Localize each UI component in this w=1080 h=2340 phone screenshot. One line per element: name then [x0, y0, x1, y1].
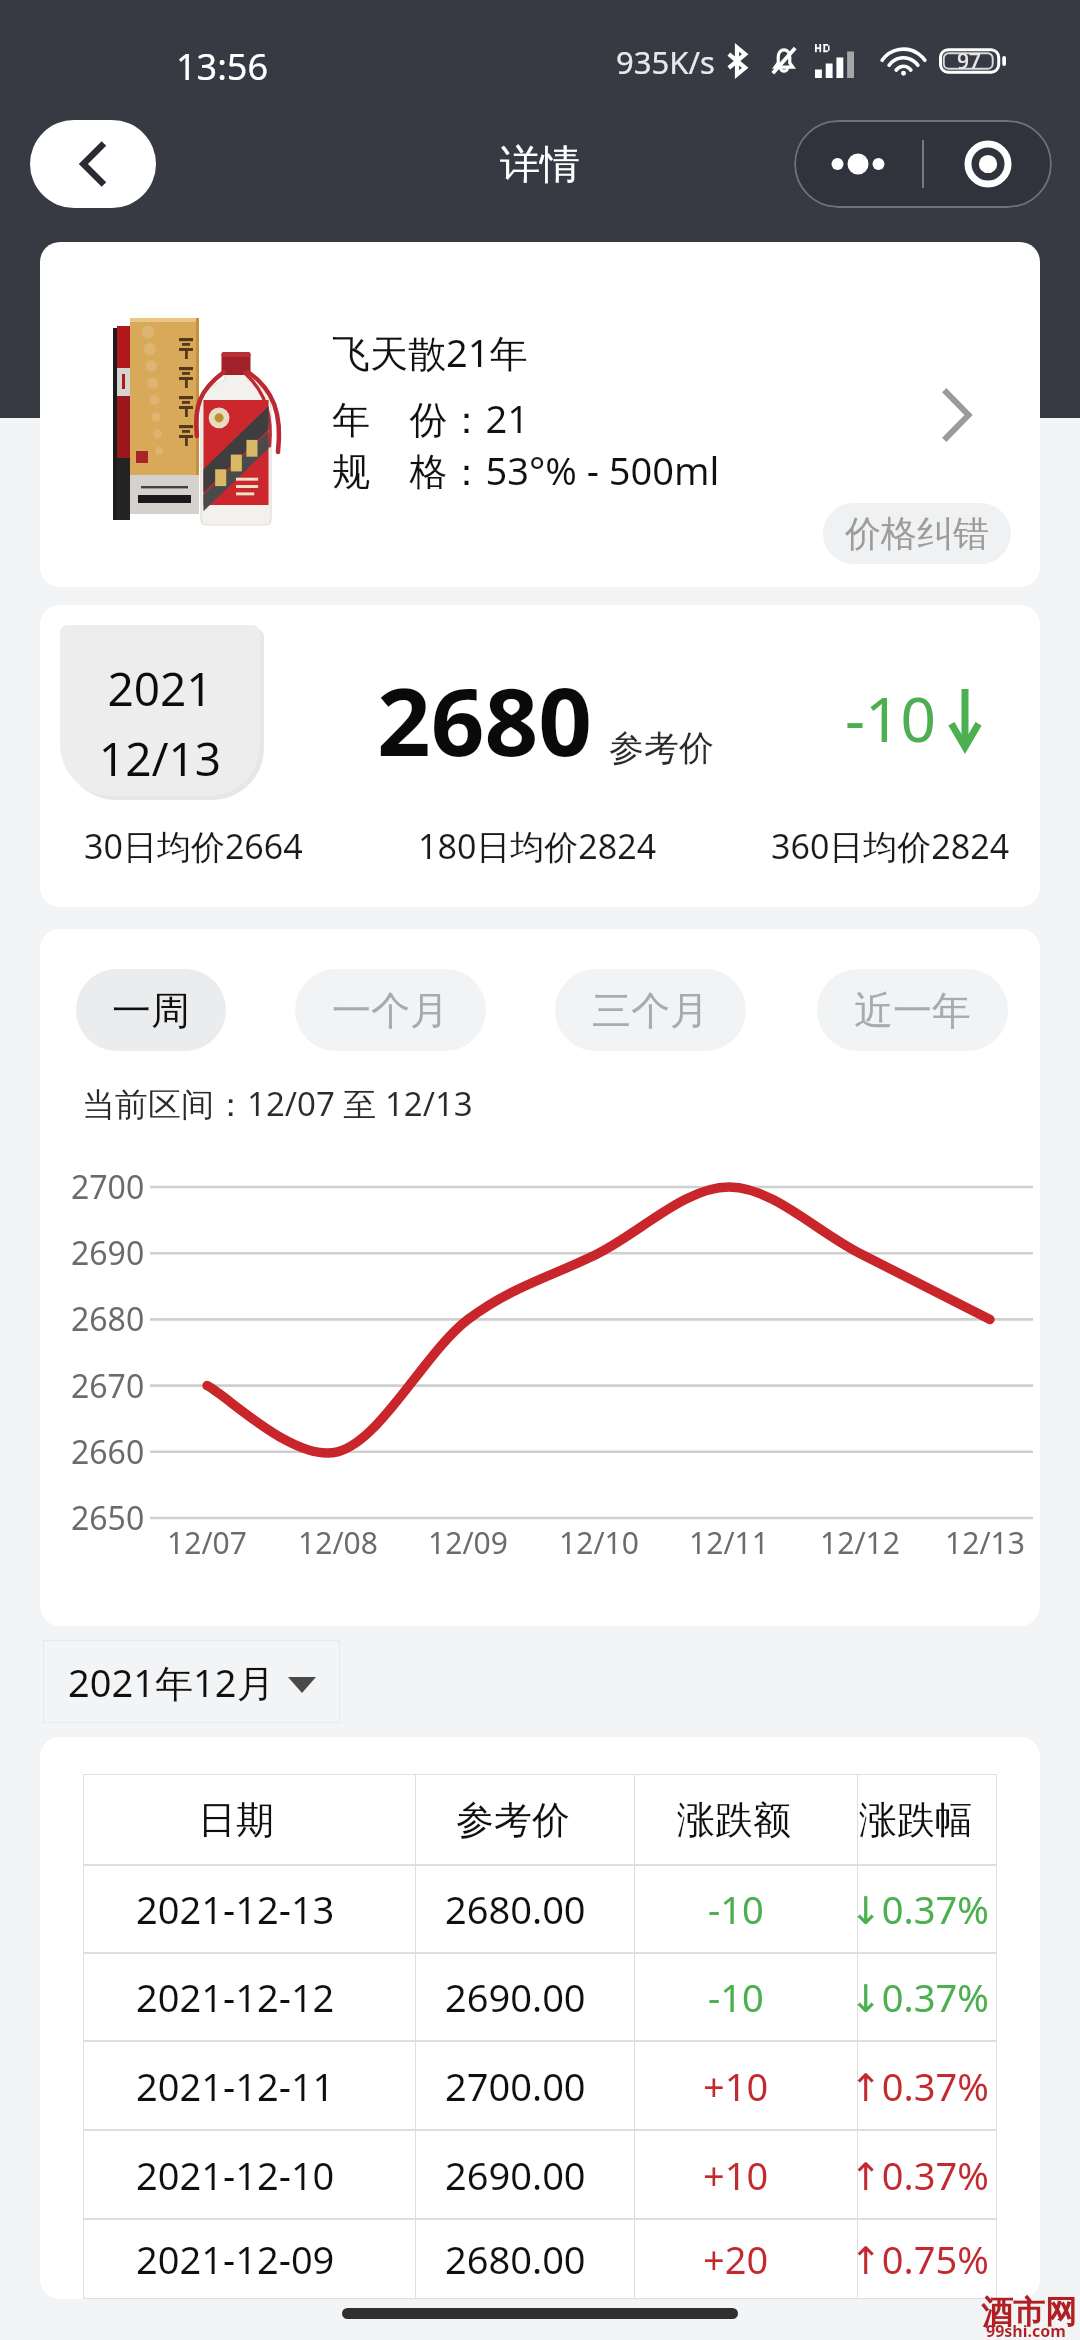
staticText: 2021年12月 [68, 1656, 275, 1708]
button[interactable]: 价格纠错 [823, 503, 1011, 564]
staticText: 12/08 [278, 1522, 398, 1563]
staticText: 2690.00 [445, 1971, 586, 2023]
staticText: ↑0.37% [850, 2149, 989, 2201]
staticText: 飞天散21年 [332, 326, 528, 378]
staticText: 30日均价2664 [84, 823, 303, 869]
staticText: -10 [845, 676, 936, 760]
staticText: 13:56 [176, 42, 269, 91]
staticText: 价格纠错 [845, 511, 989, 556]
staticText: 2690.00 [445, 2149, 586, 2201]
staticText: 12/09 [408, 1522, 528, 1563]
staticText: 一周 [112, 986, 190, 1035]
staticText: ↑0.37% [850, 2060, 989, 2112]
staticText: 2680 [377, 656, 593, 784]
button[interactable]: 2021年12月 [43, 1640, 340, 1723]
button[interactable]: 飞天散21年 [40, 242, 1040, 587]
staticText: 12/13 [60, 727, 260, 790]
staticText: 2650 [71, 1496, 145, 1540]
button[interactable]: More options [794, 120, 922, 208]
staticText: +20 [703, 2233, 769, 2285]
staticText: 99shi.com [986, 2320, 1066, 2340]
staticText: 2021-12-10 [136, 2149, 335, 2201]
staticText: 12/07 [147, 1522, 267, 1563]
staticText: 当前区间：12/07 至 12/13 [82, 1081, 473, 1126]
staticText: -10 [708, 1971, 764, 2023]
staticText: 涨跌幅 [859, 1796, 973, 1844]
staticText: 12/12 [800, 1522, 920, 1563]
staticText: 2680 [71, 1297, 145, 1341]
staticText: 2021-12-12 [136, 1971, 335, 2023]
staticText: 935K/s [616, 41, 715, 83]
staticText: 规 格：53°% - 500ml [332, 444, 720, 496]
staticText: ↓0.37% [850, 1971, 989, 2023]
staticText: 2021 [60, 657, 260, 720]
button[interactable]: 三个月 [555, 969, 746, 1051]
staticText: 三个月 [592, 986, 709, 1035]
staticText: 详情 [500, 139, 580, 189]
button[interactable]: 近一年 [817, 969, 1008, 1051]
staticText: 2700.00 [445, 2060, 586, 2112]
staticText: 2680.00 [445, 2233, 586, 2285]
staticText: 年 份：21 [332, 392, 529, 444]
button[interactable]: Close mini program [924, 120, 1052, 208]
staticText: 2021-12-09 [136, 2233, 335, 2285]
staticText: 2021-12-11 [136, 2060, 335, 2112]
staticText: 2670 [71, 1364, 145, 1408]
staticText: ↓0.37% [850, 1883, 989, 1935]
staticText: +10 [703, 2149, 769, 2201]
staticText: 12/11 [669, 1522, 789, 1563]
button[interactable]: 一个月 [295, 969, 486, 1051]
staticText: 97 [957, 47, 982, 76]
staticText: 2660 [71, 1430, 145, 1474]
button[interactable]: Back [30, 120, 156, 208]
staticText: 日期 [198, 1796, 274, 1844]
staticText: 2680.00 [445, 1883, 586, 1935]
staticText: 涨跌额 [677, 1796, 791, 1844]
staticText: 12/10 [539, 1522, 659, 1563]
staticText: 酒市网 [981, 2292, 1077, 2332]
staticText: 360日均价2824 [771, 823, 1010, 869]
staticText: -10 [708, 1883, 764, 1935]
staticText: 近一年 [854, 986, 971, 1035]
staticText: 180日均价2824 [418, 823, 657, 869]
staticText: 参考价 [456, 1796, 570, 1844]
staticText: 参考价 [609, 726, 714, 770]
button[interactable]: 一周 [76, 969, 226, 1051]
staticText: 12/13 [930, 1522, 1040, 1563]
staticText: 2690 [71, 1231, 145, 1275]
staticText: 一个月 [332, 986, 449, 1035]
staticText: 2021-12-13 [136, 1883, 335, 1935]
staticText: 2700 [71, 1165, 145, 1209]
staticText: ↑0.75% [850, 2233, 989, 2285]
staticText: +10 [703, 2060, 769, 2112]
